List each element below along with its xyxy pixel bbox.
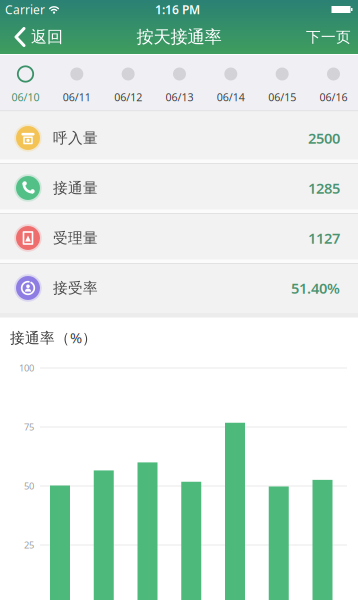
- button[interactable]: 06/11: [52, 55, 102, 111]
- staticText: 50: [24, 480, 34, 492]
- staticText: 06/10: [11, 90, 39, 104]
- staticText: 25: [24, 539, 34, 551]
- staticText: 1285: [308, 178, 340, 198]
- button[interactable]: 返回: [7, 20, 69, 54]
- staticText: 06/15: [268, 90, 296, 104]
- button[interactable]: 06/16: [308, 55, 358, 111]
- staticText: 06/11: [63, 90, 91, 104]
- button[interactable]: 06/14: [206, 55, 256, 111]
- staticText: 06/14: [217, 90, 245, 104]
- staticText: 1:16 PM: [155, 1, 200, 17]
- staticText: 100: [19, 362, 34, 374]
- staticText: 接通量: [53, 179, 98, 197]
- staticText: 下一页: [306, 28, 351, 46]
- button[interactable]: 06/12: [103, 55, 153, 111]
- staticText: 1127: [308, 228, 340, 248]
- staticText: 返回: [31, 27, 63, 47]
- staticText: 06/16: [319, 90, 347, 104]
- staticText: 2500: [308, 128, 340, 148]
- staticText: Carrier: [5, 1, 45, 17]
- staticText: 受理量: [53, 229, 98, 247]
- staticText: 接受率: [53, 279, 98, 297]
- staticText: 51.40%: [291, 278, 340, 298]
- staticText: 06/13: [165, 90, 193, 104]
- staticText: 呼入量: [53, 129, 98, 147]
- button[interactable]: 06/10: [0, 55, 50, 111]
- staticText: 75: [24, 421, 34, 433]
- staticText: 06/12: [114, 90, 142, 104]
- button[interactable]: 06/15: [257, 55, 307, 111]
- button[interactable]: 下一页: [275, 20, 351, 54]
- staticText: 接通率（%）: [10, 328, 97, 347]
- button[interactable]: 06/13: [154, 55, 204, 111]
- staticText: 按天接通率: [136, 26, 221, 48]
